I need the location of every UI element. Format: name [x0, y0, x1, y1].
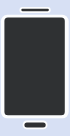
- button[interactable]: Home: [24, 122, 46, 128]
